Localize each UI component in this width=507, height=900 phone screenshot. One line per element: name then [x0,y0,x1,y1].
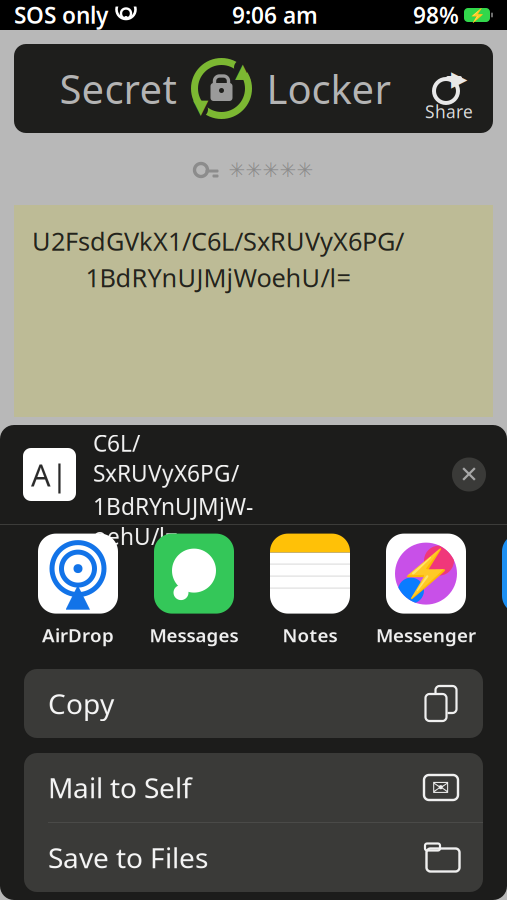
button[interactable]: Notes [252,534,368,647]
staticText: Locker [266,62,391,115]
button[interactable]: Fa [484,534,507,647]
staticText: ✕ [459,462,478,487]
button[interactable]: Close [444,449,494,499]
button[interactable]: Save to Files [24,823,483,892]
staticText: 9:06 am [232,0,318,30]
button[interactable]: ⚡ [368,534,484,647]
button[interactable]: Copy [24,669,483,738]
staticText: Notes [282,623,337,647]
staticText: Save to Files [48,839,208,876]
staticText: 1BdRYnUJMjWoehU/l= [93,491,253,551]
staticText: U2FsdGVkX1/C6L/SxRUVyX6PG/ [93,398,239,488]
staticText: Mail to Self [48,769,192,806]
staticText: U2FsdGVkX1/C6L/SxRUVyX6PG/ [32,224,404,258]
staticText: Messenger [376,623,476,647]
button[interactable]: Mail to Self [24,753,483,822]
staticText: AirDrop [42,623,114,647]
staticText: 1BdRYnUJMjWoehU/l= [85,261,350,294]
staticText: 98% [413,0,459,30]
staticText: ▶ [451,66,467,91]
staticText: ✉ [432,775,450,800]
staticText: ✳︎✳︎✳︎✳︎✳︎ [228,159,313,181]
button[interactable]: Messages [136,534,252,647]
staticText: ▲ [65,576,90,613]
button[interactable]: ▲ [20,534,136,647]
staticText: A| [31,454,68,495]
staticText: ▲ [235,59,250,82]
staticText: ▼ [193,95,208,118]
staticText: ⚡ [468,7,485,23]
staticText: ⚡ [398,548,454,599]
button[interactable]: Share [415,60,483,131]
staticText: Messages [149,623,238,647]
staticText: Copy [48,685,114,722]
staticText: SOS only [14,0,108,30]
staticText: Share [425,100,473,123]
staticText: Secret [59,62,176,115]
